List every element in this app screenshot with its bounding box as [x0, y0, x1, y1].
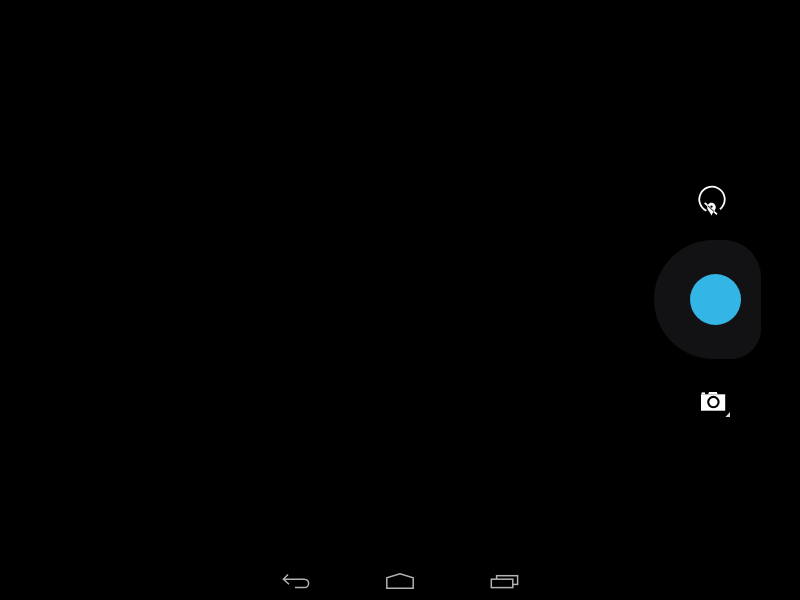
button[interactable]: Switch camera mode [698, 389, 732, 419]
button[interactable]: Recent apps [465, 557, 545, 600]
button[interactable]: Home [360, 555, 440, 600]
button[interactable]: Back [256, 556, 335, 600]
button[interactable]: Location off [698, 188, 730, 222]
button[interactable]: Shutter [654, 240, 761, 359]
